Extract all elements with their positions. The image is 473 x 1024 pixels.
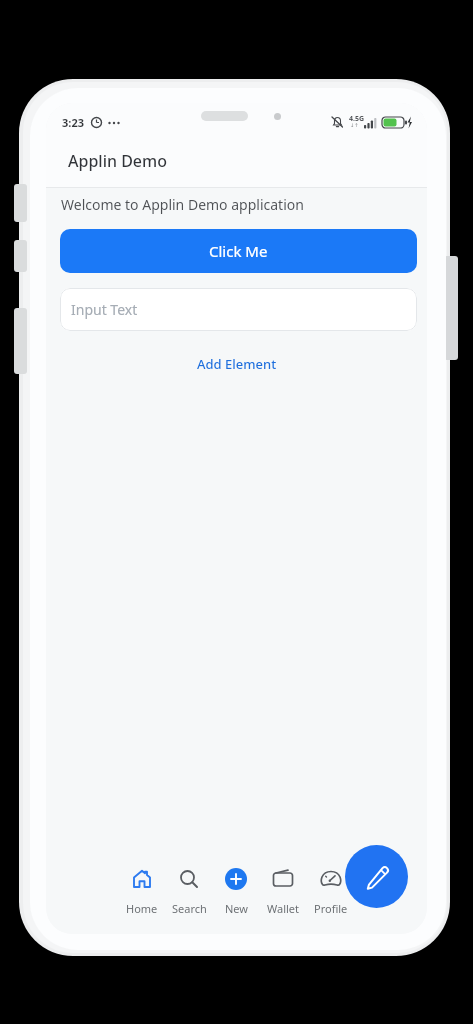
button[interactable]: New bbox=[214, 861, 258, 917]
staticText: Welcome to Applin Demo application bbox=[61, 195, 304, 214]
staticText: Click Me bbox=[209, 241, 268, 261]
staticText: Home bbox=[126, 901, 158, 916]
staticText: Search bbox=[172, 901, 207, 916]
button[interactable]: Search bbox=[167, 861, 211, 917]
staticText: Wallet bbox=[267, 901, 300, 916]
button[interactable] bbox=[345, 845, 408, 908]
button[interactable]: Click Me bbox=[60, 229, 417, 273]
staticText: Add Element bbox=[197, 355, 277, 373]
staticText: 3:23 bbox=[62, 115, 84, 130]
button[interactable]: Input Text bbox=[60, 288, 417, 331]
button[interactable]: Home bbox=[120, 861, 164, 917]
staticText: New bbox=[225, 901, 248, 916]
staticText: Profile bbox=[314, 901, 348, 916]
button[interactable]: Add Element bbox=[46, 355, 427, 373]
button[interactable]: Profile bbox=[309, 861, 353, 917]
button[interactable]: Wallet bbox=[261, 861, 305, 917]
staticText: Input Text bbox=[71, 300, 138, 319]
staticText: 4.5G bbox=[349, 114, 365, 124]
staticText: ↓↑ bbox=[350, 122, 359, 128]
staticText: Applin Demo bbox=[68, 150, 167, 172]
